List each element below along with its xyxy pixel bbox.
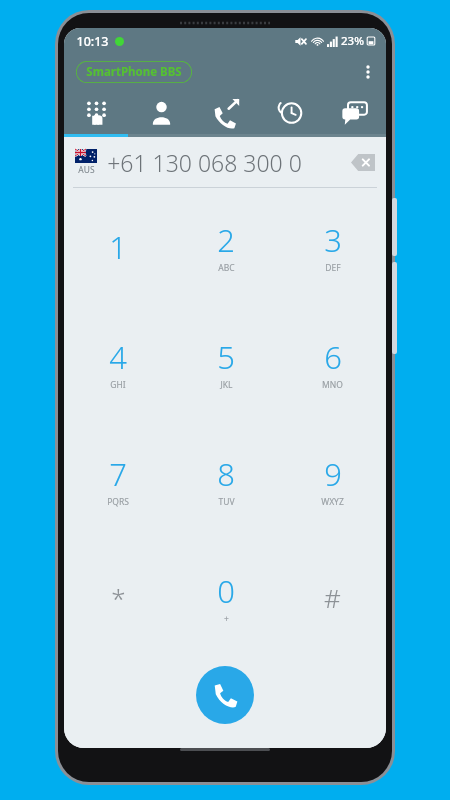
staticText: 6 — [324, 336, 342, 378]
staticText: 9 — [324, 453, 342, 495]
button[interactable]: 1 — [64, 194, 172, 311]
staticText: 7 — [109, 453, 127, 495]
button[interactable]: 9 — [279, 428, 386, 545]
button[interactable]: Backspace — [348, 149, 378, 175]
button[interactable]: 7 — [64, 428, 172, 545]
staticText: ABC — [218, 262, 235, 274]
button[interactable]: 2 — [172, 194, 279, 311]
button[interactable]: History — [258, 90, 322, 134]
staticText: 23% — [341, 33, 364, 49]
staticText: * — [111, 580, 126, 615]
button[interactable]: Keypad — [64, 90, 129, 134]
button[interactable]: Contacts — [129, 90, 194, 134]
staticText: 3 — [324, 219, 342, 261]
button[interactable]: Messages — [322, 90, 386, 134]
button[interactable]: Call — [196, 666, 254, 724]
staticText: WXYZ — [321, 496, 344, 508]
button[interactable]: * — [64, 545, 172, 662]
button[interactable]: 0 — [172, 545, 279, 662]
staticText: 8 — [217, 453, 235, 495]
staticText: 1 — [109, 226, 127, 268]
staticText: SmartPhone BBS — [86, 64, 182, 80]
staticText: + — [224, 613, 229, 625]
button[interactable]: Recents — [194, 90, 258, 134]
staticText: 0 — [217, 570, 235, 612]
button[interactable]: 5 — [172, 311, 279, 428]
button[interactable]: 8 — [172, 428, 279, 545]
button[interactable]: SmartPhone BBS — [76, 61, 192, 83]
staticText: 2 — [217, 219, 235, 261]
staticText: AUS — [78, 164, 95, 176]
staticText: GHI — [110, 379, 126, 391]
staticText: MNO — [322, 379, 343, 391]
staticText: # — [324, 580, 341, 615]
staticText: TUV — [218, 496, 235, 508]
staticText: 10:13 — [76, 33, 109, 50]
staticText: +61 130 068 300 0 — [107, 147, 302, 178]
staticText: DEF — [325, 262, 341, 274]
staticText: 5 — [217, 336, 235, 378]
button[interactable]: # — [279, 545, 386, 662]
button[interactable]: 4 — [64, 311, 172, 428]
button[interactable]: AUS — [73, 147, 99, 178]
staticText: PQRS — [107, 496, 129, 508]
button[interactable]: 6 — [279, 311, 386, 428]
staticText: JKL — [220, 379, 233, 391]
staticText: 4 — [109, 336, 127, 378]
button[interactable]: 3 — [279, 194, 386, 311]
button[interactable]: More options — [350, 54, 386, 90]
